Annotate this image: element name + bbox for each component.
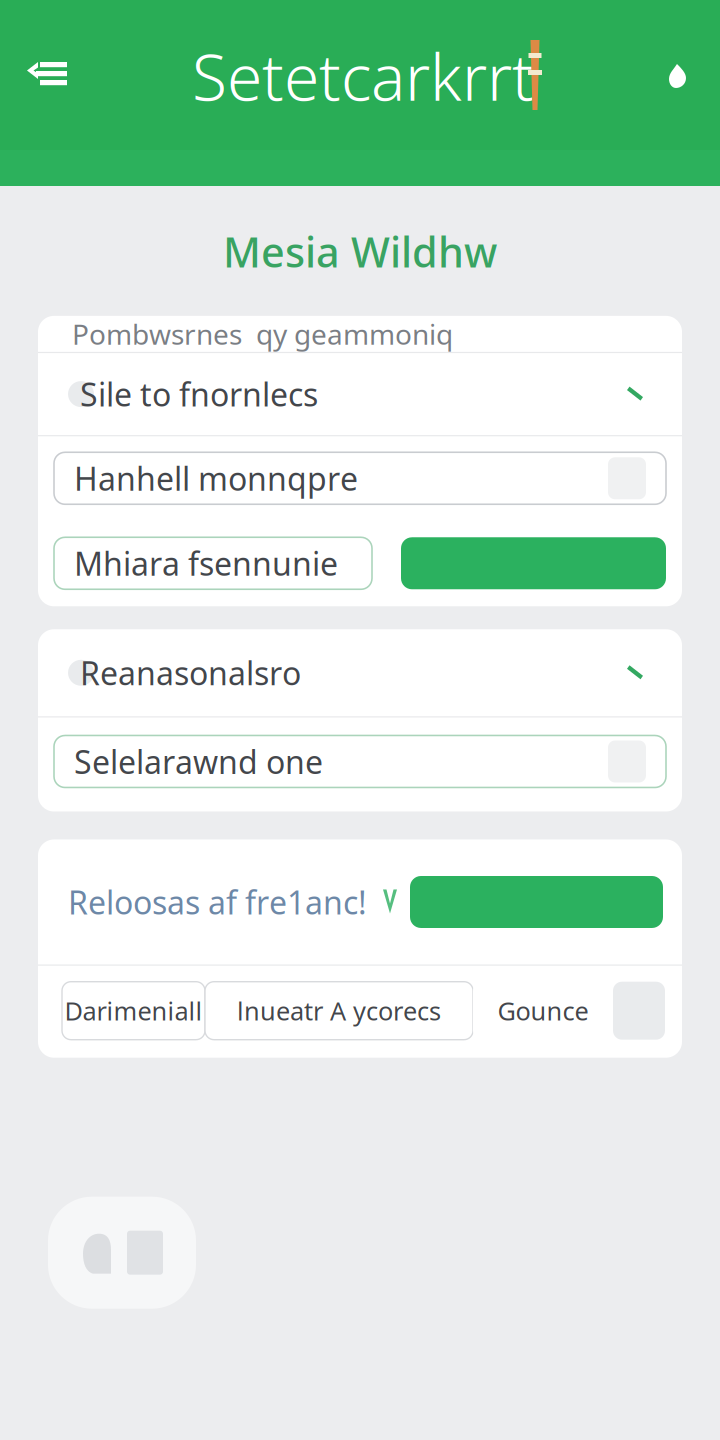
- staticText: Selelarawnd one: [74, 740, 323, 783]
- button[interactable]: [410, 876, 663, 928]
- button[interactable]: Gounce: [473, 982, 613, 1040]
- staticText: Setetcarkrrt: [192, 33, 534, 118]
- button[interactable]: Back: [26, 61, 68, 91]
- staticText: Darimeniall: [64, 994, 202, 1027]
- staticText: Mhiara fsennunie: [74, 542, 338, 584]
- button[interactable]: Selelarawnd one: [54, 735, 666, 787]
- button[interactable]: Hanhell monnqpre: [54, 452, 666, 504]
- button[interactable]: Mhiara fsennunie: [54, 537, 372, 589]
- button[interactable]: Darimeniall: [62, 982, 205, 1040]
- staticText: Reanasonalsro: [80, 651, 301, 694]
- button[interactable]: [401, 537, 666, 589]
- staticText: Mesia Wildhw: [223, 224, 497, 279]
- button[interactable]: lnueatr A ycorecs: [205, 982, 473, 1040]
- button[interactable]: Reanasonalsro: [38, 632, 682, 714]
- staticText: Gounce: [497, 994, 588, 1027]
- button[interactable]: Sile to fnornlecs: [38, 353, 682, 435]
- staticText: Sile to fnornlecs: [80, 373, 318, 415]
- staticText: lnueatr A ycorecs: [237, 994, 441, 1027]
- staticText: Reloosas af fre1anc!: [68, 881, 367, 923]
- staticText: Pombwsrnes qy geammoniq: [72, 315, 453, 352]
- button[interactable]: App shortcut: [48, 1197, 196, 1309]
- staticText: Hanhell monnqpre: [74, 457, 358, 499]
- button[interactable]: Account: [666, 61, 690, 91]
